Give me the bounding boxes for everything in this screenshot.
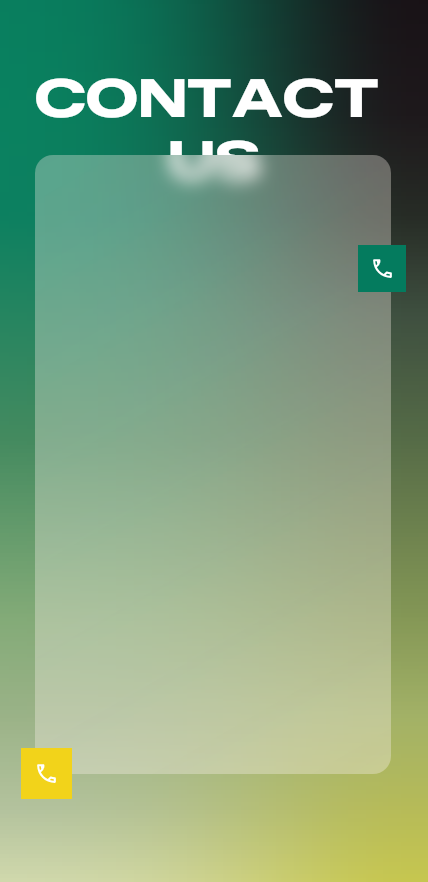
button[interactable]: Call	[21, 748, 72, 799]
button[interactable]: Call	[358, 245, 406, 292]
